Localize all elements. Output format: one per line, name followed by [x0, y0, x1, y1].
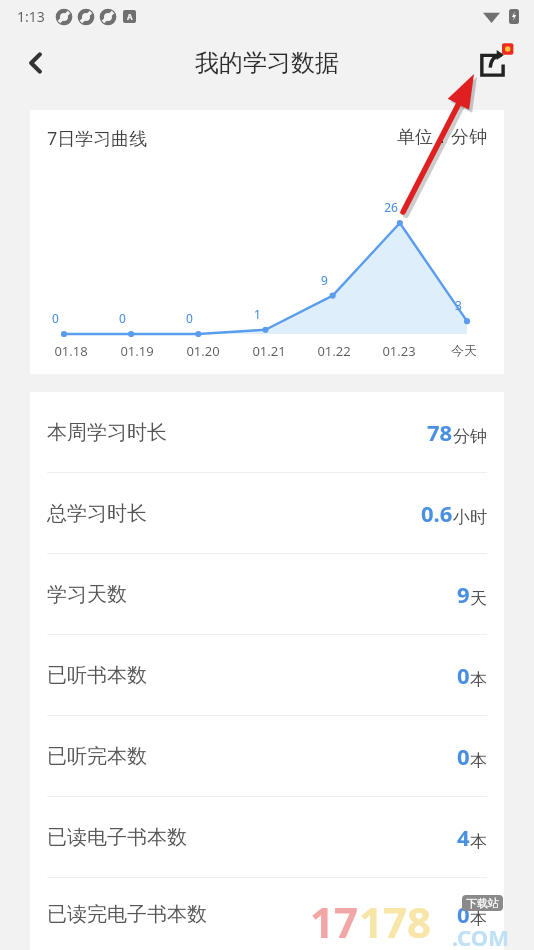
- staticText: 小时: [453, 507, 487, 528]
- staticText: .COM: [452, 922, 509, 950]
- staticText: 我的学习数据: [195, 48, 339, 78]
- staticText: 本: [470, 908, 487, 929]
- button[interactable]: 已读电子书本数: [30, 797, 504, 877]
- staticText: 本: [470, 750, 487, 771]
- staticText: 17: [310, 893, 359, 950]
- staticText: 已听完本数: [47, 744, 147, 769]
- staticText: 分钟: [453, 426, 487, 447]
- staticText: 01.21: [252, 342, 286, 360]
- staticText: 01.22: [317, 342, 351, 360]
- button[interactable]: 本周学习时长: [30, 392, 504, 472]
- button[interactable]: 已读完电子书本数: [30, 878, 504, 950]
- staticText: 26: [384, 199, 398, 215]
- staticText: 已听书本数: [47, 663, 147, 688]
- staticText: 7日学习曲线: [47, 126, 148, 151]
- button[interactable]: Share: [468, 37, 520, 89]
- staticText: 本: [470, 831, 487, 852]
- staticText: 下载站: [466, 896, 499, 910]
- button[interactable]: 总学习时长: [30, 473, 504, 553]
- staticText: 9: [457, 579, 470, 609]
- staticText: 本: [470, 669, 487, 690]
- staticText: 01.19: [120, 342, 154, 360]
- staticText: A: [127, 11, 133, 22]
- staticText: 0: [52, 310, 59, 326]
- staticText: 0: [186, 310, 193, 326]
- staticText: 1: [254, 306, 261, 322]
- staticText: 9: [321, 272, 328, 288]
- staticText: 已读电子书本数: [47, 825, 187, 850]
- button[interactable]: 已听完本数: [30, 716, 504, 796]
- button[interactable]: 已听书本数: [30, 635, 504, 715]
- staticText: 178: [359, 893, 432, 950]
- staticText: 78: [427, 417, 453, 447]
- staticText: 0.6: [421, 498, 453, 528]
- staticText: 0: [457, 899, 470, 929]
- staticText: 0: [119, 310, 126, 326]
- staticText: 01.18: [54, 342, 88, 360]
- button[interactable]: 学习天数: [30, 554, 504, 634]
- staticText: 01.20: [186, 342, 220, 360]
- button[interactable]: Back: [12, 39, 60, 87]
- staticText: 0: [457, 741, 470, 771]
- staticText: 1:13: [17, 7, 45, 26]
- staticText: 0: [457, 660, 470, 690]
- staticText: 01.23: [382, 342, 416, 360]
- staticText: 学习天数: [47, 582, 127, 607]
- staticText: 天: [470, 588, 487, 609]
- staticText: 4: [457, 822, 470, 852]
- staticText: 已读完电子书本数: [47, 902, 207, 927]
- staticText: 本周学习时长: [47, 420, 167, 445]
- staticText: 今天: [451, 342, 477, 358]
- staticText: 单位：分钟: [397, 126, 487, 149]
- staticText: 3: [455, 297, 462, 313]
- staticText: 总学习时长: [47, 501, 147, 526]
